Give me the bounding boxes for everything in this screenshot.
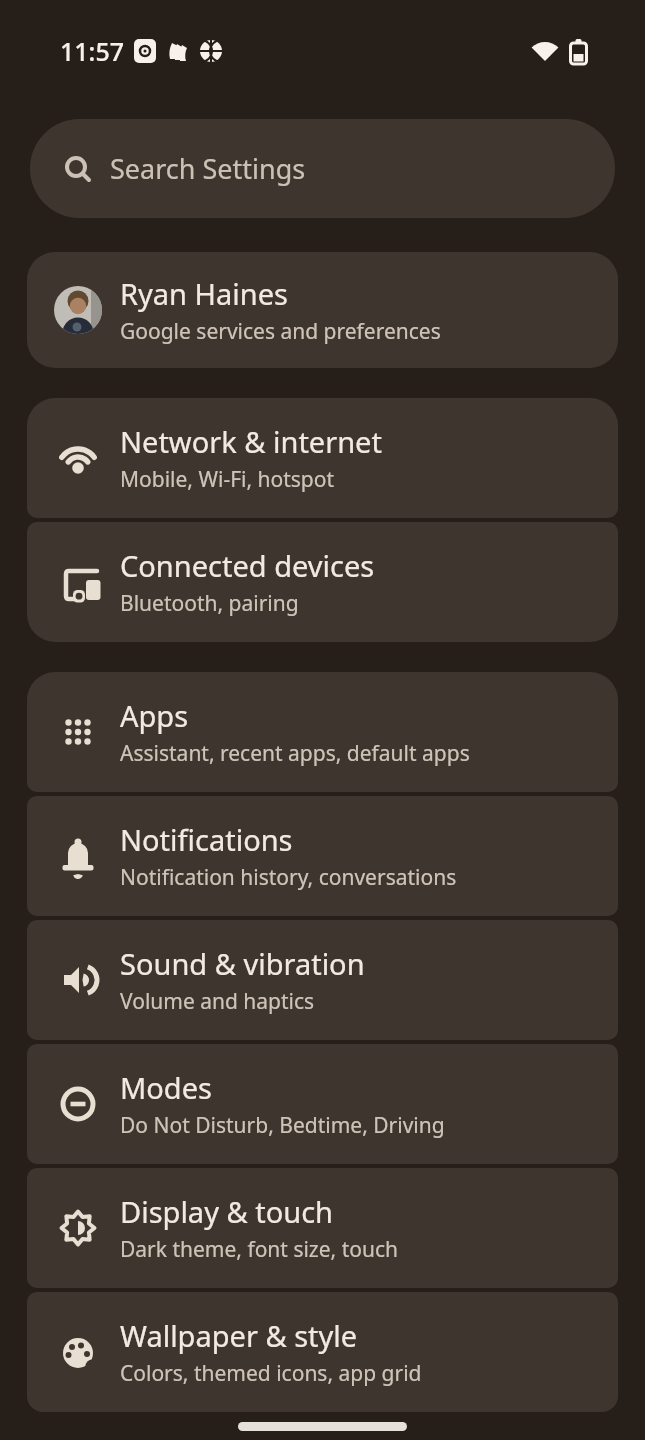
button[interactable]: Search Settings — [30, 119, 615, 218]
button[interactable]: Notifications — [27, 796, 618, 916]
staticText: Google services and preferences — [120, 317, 441, 346]
staticText: Wallpaper & style — [120, 1316, 358, 1355]
staticText: Bluetooth, pairing — [120, 589, 299, 618]
staticText: Assistant, recent apps, default apps — [120, 739, 470, 768]
button[interactable]: Ryan Haines — [27, 252, 618, 368]
staticText: Do Not Disturb, Bedtime, Driving — [120, 1111, 445, 1140]
button[interactable]: Apps — [27, 672, 618, 792]
staticText: Dark theme, font size, touch — [120, 1235, 398, 1264]
button[interactable]: Sound & vibration — [27, 920, 618, 1040]
staticText: Network & internet — [120, 422, 382, 461]
button[interactable]: Connected devices — [27, 522, 618, 642]
staticText: Sound & vibration — [120, 944, 365, 983]
staticText: Notification history, conversations — [120, 863, 457, 892]
button[interactable]: Modes — [27, 1044, 618, 1164]
staticText: Apps — [120, 696, 189, 735]
staticText: Colors, themed icons, app grid — [120, 1359, 422, 1388]
staticText: Ryan Haines — [120, 274, 288, 313]
staticText: Search Settings — [110, 150, 306, 187]
button[interactable]: Network & internet — [27, 398, 618, 518]
staticText: Volume and haptics — [120, 987, 315, 1016]
staticText: Connected devices — [120, 546, 375, 585]
staticText: 11:57 — [60, 34, 125, 68]
staticText: Display & touch — [120, 1192, 334, 1231]
staticText: Modes — [120, 1068, 212, 1107]
button[interactable]: Display & touch — [27, 1168, 618, 1288]
staticText: Notifications — [120, 820, 293, 859]
button[interactable]: Wallpaper & style — [27, 1292, 618, 1412]
staticText: Mobile, Wi-Fi, hotspot — [120, 465, 335, 494]
